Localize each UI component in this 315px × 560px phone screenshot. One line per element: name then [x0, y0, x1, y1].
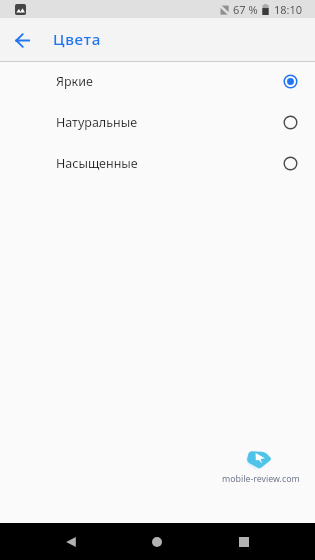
- button[interactable]: Насыщенные: [0, 143, 315, 184]
- staticText: Яркие: [56, 73, 93, 90]
- button[interactable]: Back: [46, 523, 96, 560]
- button[interactable]: Back: [4, 22, 40, 58]
- button[interactable]: Натуральные: [0, 102, 315, 143]
- button[interactable]: Яркие: [0, 61, 315, 102]
- staticText: 18:10: [274, 2, 303, 17]
- staticText: Цвета: [53, 29, 102, 50]
- staticText: Натуральные: [56, 114, 138, 131]
- staticText: 67 %: [233, 2, 258, 17]
- staticText: mobile-review.com: [222, 473, 300, 485]
- button[interactable]: Home: [132, 523, 182, 560]
- staticText: Насыщенные: [56, 155, 138, 172]
- button[interactable]: Recents: [219, 523, 269, 560]
